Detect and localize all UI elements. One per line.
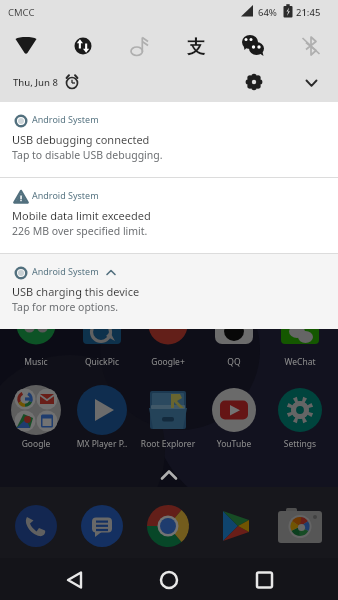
staticText: YouTube xyxy=(201,438,267,450)
button[interactable]: Music xyxy=(3,356,69,368)
button[interactable]: Google xyxy=(3,438,69,450)
staticText: USB charging this device xyxy=(12,284,140,299)
staticText: 226 MB over specified limit. xyxy=(12,224,148,238)
staticText: 支 xyxy=(187,36,205,59)
staticText: 64% xyxy=(258,6,277,19)
staticText: WeChat xyxy=(267,356,333,368)
button[interactable]: Root Explorer xyxy=(135,438,201,450)
staticText: Android System xyxy=(32,189,99,201)
staticText: 21:45 xyxy=(296,6,321,19)
button[interactable]: QuickPic xyxy=(69,356,135,368)
button[interactable]: WeChat xyxy=(267,356,333,368)
staticText: Music xyxy=(3,356,69,368)
staticText: Tap to disable USB debugging. xyxy=(12,148,163,162)
staticText: Mobile data limit exceeded xyxy=(12,208,151,223)
button[interactable]: Android System xyxy=(0,102,338,177)
staticText: CMCC xyxy=(8,6,35,19)
staticText: Tap for more options. xyxy=(12,300,119,314)
staticText: QQ xyxy=(201,356,267,368)
staticText: Thu, Jun 8 xyxy=(13,76,58,89)
button[interactable]: QQ xyxy=(201,356,267,368)
button[interactable]: Android System xyxy=(0,178,338,253)
staticText: USB debugging connected xyxy=(12,132,150,147)
button[interactable]: Android System xyxy=(0,254,338,329)
staticText: MX Player P.. xyxy=(69,438,135,450)
staticText: Google xyxy=(3,438,69,450)
button[interactable]: Settings xyxy=(267,438,333,450)
button[interactable]: MX Player P.. xyxy=(69,438,135,450)
button[interactable]: YouTube xyxy=(201,438,267,450)
button[interactable]: Google+ xyxy=(135,356,201,368)
staticText: Google+ xyxy=(135,356,201,368)
staticText: Settings xyxy=(267,438,333,450)
staticText: Android System xyxy=(32,265,99,277)
staticText: Root Explorer xyxy=(135,438,201,450)
staticText: Android System xyxy=(32,113,99,125)
staticText: QuickPic xyxy=(69,356,135,368)
